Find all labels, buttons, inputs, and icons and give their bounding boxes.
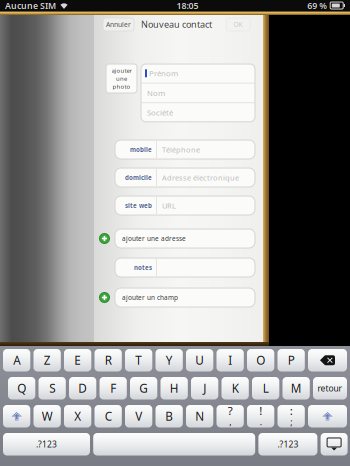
staticText: A xyxy=(13,352,20,368)
staticText: G xyxy=(139,380,148,396)
staticText: Prénom xyxy=(149,68,178,78)
staticText: Nouveau contact xyxy=(141,18,212,30)
staticText: D xyxy=(78,380,87,396)
button[interactable]: T xyxy=(125,349,152,371)
button[interactable]: ! xyxy=(247,405,274,427)
button[interactable]: X xyxy=(64,405,91,427)
button[interactable]: .?123 xyxy=(3,433,90,455)
button[interactable]: Supprimer xyxy=(308,349,347,371)
button[interactable]: notes xyxy=(115,258,255,277)
button[interactable]: Z xyxy=(33,349,61,371)
button[interactable]: P xyxy=(277,349,305,371)
button[interactable]: Prénom xyxy=(141,64,255,83)
button[interactable]: C xyxy=(94,405,122,427)
button[interactable]: G xyxy=(130,377,157,399)
button[interactable]: retour xyxy=(313,377,347,399)
staticText: P xyxy=(288,352,295,368)
staticText: F xyxy=(110,380,116,396)
staticText: ? xyxy=(228,403,233,418)
staticText: Z xyxy=(44,352,51,368)
staticText: 18:05 xyxy=(177,0,199,11)
button[interactable]: N xyxy=(186,405,213,427)
button[interactable]: A xyxy=(3,349,30,371)
staticText: retour xyxy=(317,382,342,394)
button[interactable]: M xyxy=(282,377,310,399)
button[interactable]: Majuscule xyxy=(308,405,347,427)
staticText: L xyxy=(263,380,269,396)
staticText: ; xyxy=(290,416,292,428)
button[interactable]: : xyxy=(277,405,305,427)
staticText: photo xyxy=(112,82,130,90)
staticText: H xyxy=(170,380,179,396)
staticText: J xyxy=(203,380,206,396)
button[interactable]: site web xyxy=(115,196,255,215)
button[interactable]: ajouter une adresse xyxy=(99,229,255,248)
button[interactable]: F xyxy=(99,377,127,399)
staticText: E xyxy=(74,352,81,368)
staticText: , xyxy=(229,416,231,428)
staticText: . xyxy=(260,416,262,428)
button[interactable]: Espace xyxy=(93,433,255,455)
button[interactable]: Majuscule xyxy=(3,405,30,427)
staticText: ajouter un champ xyxy=(122,293,178,302)
button[interactable]: H xyxy=(160,377,188,399)
staticText: X xyxy=(74,408,81,424)
button[interactable]: R xyxy=(94,349,122,371)
button[interactable]: OK xyxy=(226,18,250,31)
button[interactable]: K xyxy=(221,377,249,399)
staticText: Téléphone xyxy=(162,144,200,155)
staticText: I xyxy=(228,352,232,368)
button[interactable]: L xyxy=(252,377,279,399)
staticText: 69 % xyxy=(307,0,327,11)
button[interactable]: V xyxy=(125,405,152,427)
staticText: domicile xyxy=(125,173,152,182)
button[interactable]: domicile xyxy=(115,168,255,187)
staticText: K xyxy=(232,380,239,396)
staticText: OK xyxy=(233,20,242,29)
button[interactable]: S xyxy=(38,377,66,399)
button[interactable]: J xyxy=(191,377,218,399)
staticText: : xyxy=(290,403,293,418)
staticText: notes xyxy=(134,263,152,272)
staticText: W xyxy=(42,408,53,424)
button[interactable]: Nom xyxy=(141,84,255,102)
button[interactable]: Y xyxy=(155,349,183,371)
staticText: R xyxy=(105,352,112,368)
staticText: .?123 xyxy=(277,438,298,450)
staticText: C xyxy=(105,408,112,424)
button[interactable]: U xyxy=(186,349,213,371)
button[interactable]: I xyxy=(216,349,244,371)
staticText: URL xyxy=(162,200,176,211)
button[interactable]: Masquer le clavier xyxy=(321,433,348,455)
staticText: mobile xyxy=(130,145,152,154)
staticText: Aucune SIM xyxy=(5,0,56,11)
staticText: B xyxy=(165,408,173,424)
staticText: Société xyxy=(147,107,173,118)
button[interactable]: D xyxy=(69,377,96,399)
staticText: M xyxy=(291,380,302,396)
button[interactable]: mobile xyxy=(115,140,255,159)
staticText: ! xyxy=(259,403,262,418)
staticText: ajouter une adresse xyxy=(122,234,186,243)
staticText: V xyxy=(135,408,142,424)
staticText: Q xyxy=(17,380,26,396)
staticText: N xyxy=(195,408,204,424)
staticText: Nom xyxy=(147,88,165,98)
staticText: Y xyxy=(166,352,173,368)
button[interactable]: Annuler xyxy=(103,18,134,31)
staticText: .?123 xyxy=(36,438,57,450)
button[interactable]: ajouter une photo xyxy=(106,64,137,93)
button[interactable]: .?123 xyxy=(258,433,317,455)
button[interactable]: B xyxy=(155,405,183,427)
button[interactable]: Q xyxy=(8,377,35,399)
button[interactable]: Société xyxy=(141,103,255,122)
staticText: site web xyxy=(125,201,152,210)
button[interactable]: O xyxy=(247,349,274,371)
button[interactable]: ajouter un champ xyxy=(99,288,255,307)
staticText: Adresse électronique xyxy=(162,172,239,183)
button[interactable]: E xyxy=(64,349,91,371)
button[interactable]: W xyxy=(33,405,61,427)
button[interactable]: ? xyxy=(216,405,244,427)
staticText: S xyxy=(49,380,55,396)
staticText: une xyxy=(116,74,127,82)
